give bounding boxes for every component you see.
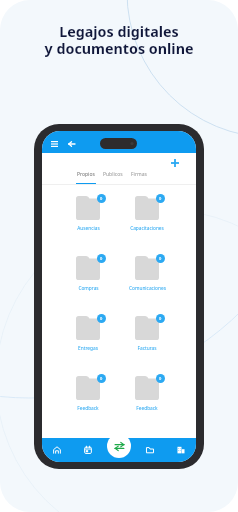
staticText: Entregas <box>78 345 98 352</box>
staticText: Ausencias <box>77 225 100 232</box>
staticText: 0 <box>100 376 103 381</box>
button[interactable]: Publicos <box>102 171 124 184</box>
staticText: 0 <box>159 256 162 261</box>
button[interactable]: 0 <box>135 313 165 352</box>
staticText: Propios <box>77 171 95 178</box>
staticText: 0 <box>159 316 162 321</box>
staticText: Legajos digitales y documentos online <box>0 22 238 59</box>
button[interactable]: 0 <box>76 193 106 232</box>
staticText: Feedback <box>77 405 99 412</box>
button[interactable]: 0 <box>76 373 106 412</box>
button[interactable]: 0 <box>135 373 165 412</box>
button[interactable]: 0 <box>135 253 165 292</box>
button[interactable]: Transfer <box>107 434 131 458</box>
staticText: 0 <box>100 256 103 261</box>
button[interactable]: Propios <box>75 171 97 184</box>
button[interactable]: Firmas <box>128 171 150 184</box>
button[interactable]: Folders <box>134 438 165 462</box>
button[interactable]: Company <box>165 438 196 462</box>
staticText: 0 <box>159 196 162 201</box>
button[interactable]: 0 <box>76 313 106 352</box>
staticText: Feedback <box>136 405 158 412</box>
button[interactable]: Add <box>169 157 181 169</box>
staticText: 0 <box>100 316 103 321</box>
staticText: Facturas <box>137 345 157 352</box>
staticText: 0 <box>159 376 162 381</box>
staticText: Publicos <box>103 171 123 178</box>
button[interactable]: 0 <box>76 253 106 292</box>
staticText: Comunicaciones <box>129 285 166 292</box>
button[interactable]: 0 <box>135 193 165 232</box>
button[interactable]: Home <box>42 438 72 462</box>
staticText: Compras <box>78 285 99 292</box>
button[interactable]: Back <box>65 137 78 150</box>
staticText: 0 <box>100 196 103 201</box>
staticText: Capacitaciones <box>130 225 164 232</box>
button[interactable]: Calendar <box>72 438 103 462</box>
button[interactable]: Menu <box>48 137 61 150</box>
staticText: Firmas <box>131 171 147 178</box>
